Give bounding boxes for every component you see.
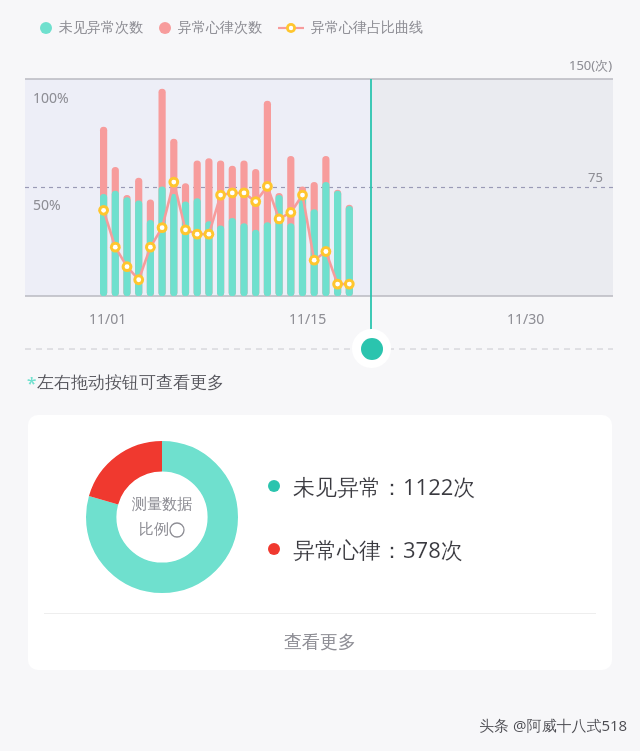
staticText: 左右拖动按钮可查看更多: [37, 372, 224, 393]
staticText: 未见异常次数: [59, 19, 143, 37]
staticText: 异常心律：378次: [293, 534, 463, 564]
staticText: 头条 @阿威十八式518: [479, 715, 628, 735]
staticText: 11/15: [289, 309, 327, 328]
staticText: 查看更多: [284, 631, 356, 654]
staticText: 11/01: [89, 309, 127, 328]
staticText: 11/30: [507, 309, 545, 328]
staticText: *: [27, 371, 37, 394]
staticText: 比例: [139, 520, 169, 539]
staticText: 异常心律占比曲线: [311, 19, 423, 37]
button[interactable]: 查看更多: [28, 614, 612, 670]
staticText: 异常心律次数: [178, 19, 262, 37]
staticText: 未见异常：1122次: [293, 471, 476, 501]
staticText: 150(次): [569, 56, 613, 74]
staticText: 测量数据: [132, 495, 192, 514]
staticText: 100%: [33, 88, 69, 107]
button[interactable]: 拖动滑块: [352, 329, 391, 368]
staticText: 75: [588, 168, 603, 186]
staticText: 50%: [33, 195, 61, 214]
